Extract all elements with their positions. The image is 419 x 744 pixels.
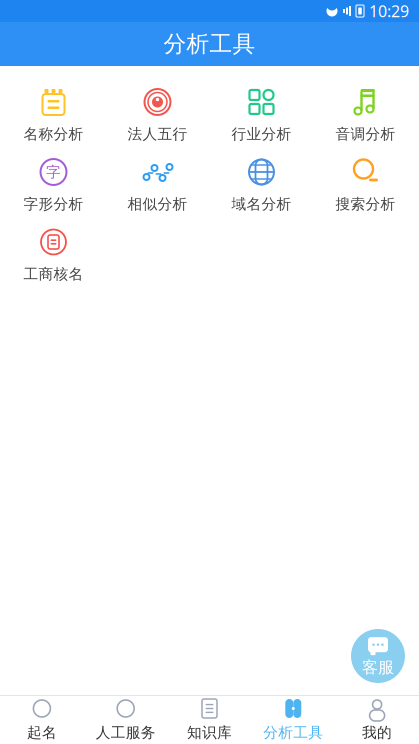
staticText: 相似分析	[127, 195, 187, 213]
button[interactable]: 法人五行	[105, 80, 209, 150]
staticText: 行业分析	[231, 125, 291, 143]
button[interactable]: 域名分析	[209, 150, 313, 220]
staticText: 字形分析	[23, 195, 83, 213]
staticText: 10:29	[369, 0, 409, 22]
button[interactable]: 行业分析	[209, 80, 313, 150]
button[interactable]: 音调分析	[313, 80, 417, 150]
button[interactable]: 字	[1, 150, 105, 220]
staticText: 搜索分析	[335, 195, 395, 213]
staticText: 我的	[362, 723, 392, 741]
staticText: 分析工具	[263, 723, 323, 741]
button[interactable]: 相似分析	[105, 150, 209, 220]
staticText: 知识库	[187, 723, 232, 741]
staticText: 工商核名	[23, 265, 83, 283]
staticText: 字	[46, 163, 61, 181]
staticText: 分析工具	[163, 30, 255, 58]
button[interactable]: 起名	[0, 696, 84, 744]
button[interactable]: 客服	[351, 629, 405, 683]
staticText: 域名分析	[231, 195, 291, 213]
button[interactable]: 知识库	[168, 696, 251, 744]
button[interactable]: 人工服务	[84, 696, 168, 744]
staticText: 客服	[362, 658, 394, 677]
button[interactable]: 分析工具	[251, 696, 335, 744]
staticText: 名称分析	[23, 125, 83, 143]
staticText: 起名	[27, 723, 57, 741]
staticText: 音调分析	[335, 125, 395, 143]
button[interactable]: 工商核名	[1, 220, 105, 290]
button[interactable]: 搜索分析	[313, 150, 417, 220]
button[interactable]: 我的	[335, 696, 419, 744]
staticText: 法人五行	[127, 125, 187, 143]
button[interactable]: 名称分析	[1, 80, 105, 150]
staticText: 人工服务	[96, 723, 156, 741]
